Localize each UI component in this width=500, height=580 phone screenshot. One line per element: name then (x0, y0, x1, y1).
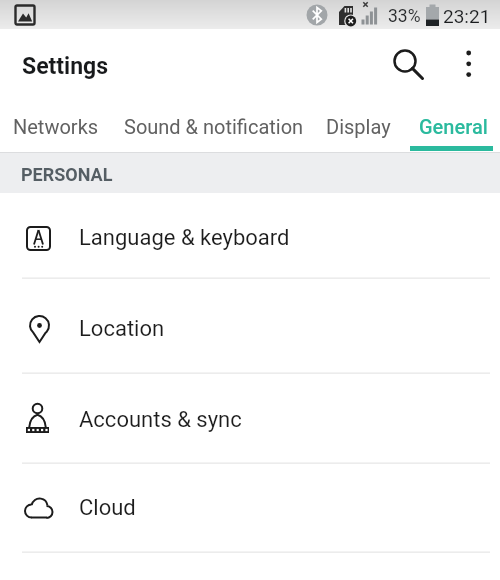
staticText: 23:21 (443, 5, 491, 27)
button[interactable] (452, 43, 488, 85)
button[interactable] (387, 43, 429, 85)
staticText: Language & keyboard (79, 225, 290, 251)
button[interactable]: Sound & notification (111, 100, 317, 152)
staticText: General (419, 115, 488, 138)
button[interactable] (0, 463, 500, 552)
staticText: Sound & notification (124, 115, 304, 138)
button[interactable]: General (407, 100, 500, 152)
staticText: Networks (13, 115, 99, 138)
staticText: PERSONAL (21, 164, 113, 185)
staticText: Settings (22, 53, 109, 80)
button[interactable] (0, 193, 500, 278)
staticText: Location (79, 316, 165, 342)
button[interactable] (0, 278, 500, 373)
button[interactable]: Networks (0, 100, 111, 152)
staticText: 33% (388, 6, 421, 27)
staticText: Display (326, 115, 391, 138)
button[interactable] (0, 373, 500, 463)
staticText: Cloud (79, 495, 136, 521)
button[interactable]: Display (317, 100, 400, 152)
staticText: Accounts & sync (79, 407, 242, 433)
